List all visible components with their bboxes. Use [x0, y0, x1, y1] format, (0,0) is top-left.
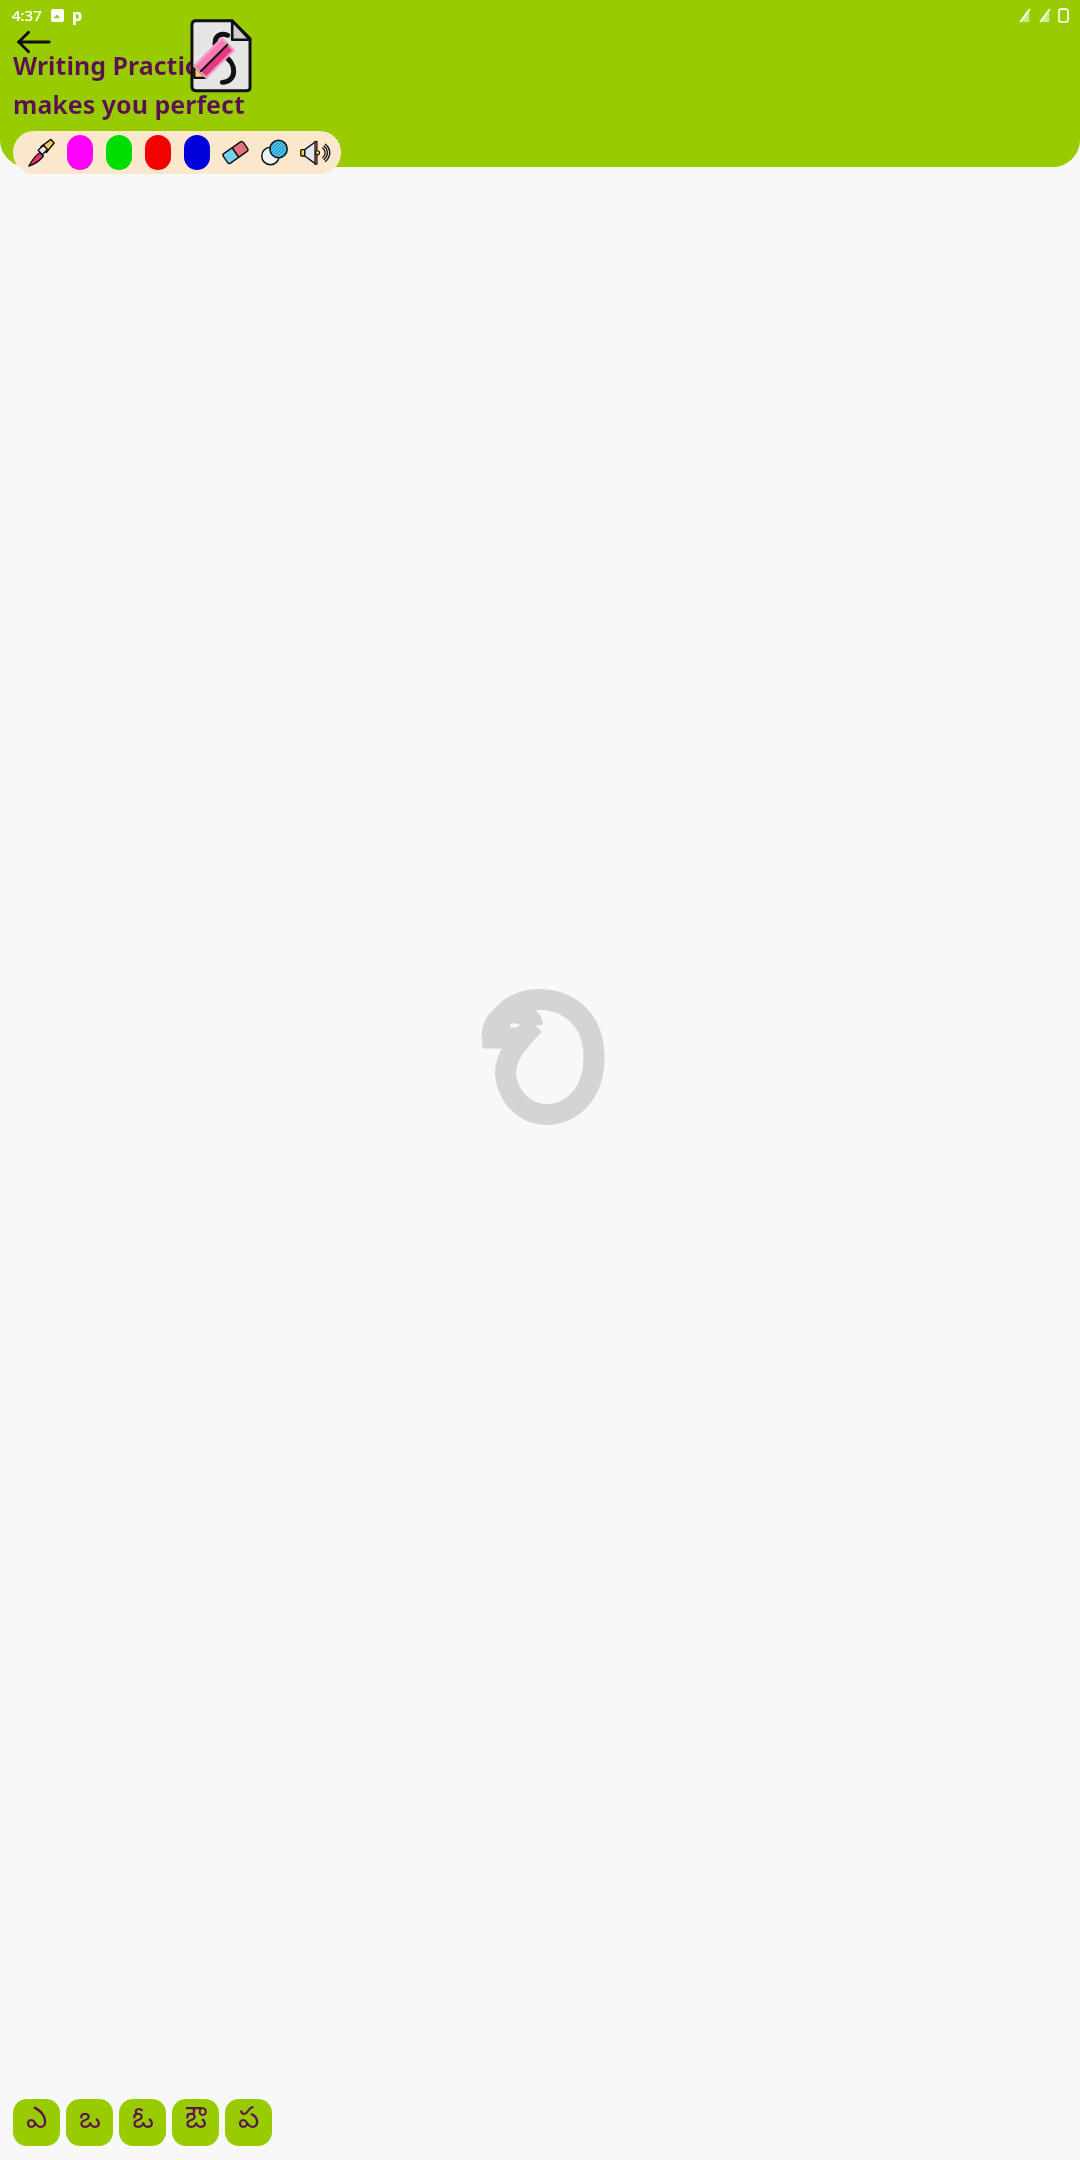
button[interactable]: ప — [225, 2099, 272, 2146]
button[interactable]: Color — [177, 131, 216, 174]
button[interactable]: Back — [14, 22, 54, 62]
staticText: ఒ — [79, 2102, 101, 2143]
staticText: ఔ — [185, 2102, 207, 2143]
staticText: ఎ — [26, 2102, 48, 2143]
staticText: ప — [238, 2102, 260, 2143]
staticText: ఓ — [132, 2102, 154, 2143]
button[interactable]: Color — [60, 131, 99, 174]
staticText: Writing Practice... — [13, 48, 234, 82]
staticText: makes you perfect — [13, 87, 245, 121]
button[interactable]: Brush — [21, 131, 60, 174]
button[interactable]: ఔ — [172, 2099, 219, 2146]
button[interactable]: Eraser — [216, 131, 255, 174]
button[interactable]: Opacity — [255, 131, 294, 174]
button[interactable]: Sound — [294, 131, 333, 174]
button[interactable]: Color — [138, 131, 177, 174]
staticText: 4:37 — [12, 5, 42, 25]
button[interactable]: ఒ — [66, 2099, 113, 2146]
button[interactable]: Color — [99, 131, 138, 174]
button[interactable]: ఎ — [13, 2099, 60, 2146]
button[interactable]: ఓ — [119, 2099, 166, 2146]
staticText: p — [72, 4, 83, 26]
